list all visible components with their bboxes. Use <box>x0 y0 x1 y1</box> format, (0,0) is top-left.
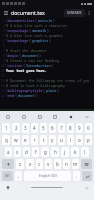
staticText: \documentclass <box>6 18 35 23</box>
button[interactable]: Hide keyboard <box>83 184 90 191</box>
staticText: \usepackage <box>6 38 29 43</box>
button[interactable]: GIF <box>36 113 43 120</box>
staticText: q <box>5 137 8 143</box>
staticText: 3 <box>24 125 27 131</box>
staticText: 14 <box>1 84 5 88</box>
button[interactable]: t <box>40 135 47 145</box>
staticText: c <box>38 161 41 167</box>
button[interactable]: e <box>22 135 29 145</box>
button[interactable]: 4 <box>31 123 38 133</box>
button[interactable]: c <box>36 159 43 169</box>
button[interactable]: 6 <box>49 123 56 133</box>
staticText: g <box>44 149 47 155</box>
button[interactable]: Menu <box>2 9 10 17</box>
staticText: % need to have a bibliography <box>6 83 65 88</box>
staticText: } <box>39 53 42 58</box>
staticText: GENERATE <box>67 11 82 15</box>
button[interactable]: 8 <box>67 123 74 133</box>
button[interactable]: o <box>76 135 83 145</box>
staticText: t <box>43 137 45 143</box>
button[interactable]: Settings <box>67 113 74 120</box>
button[interactable]: v <box>45 159 52 169</box>
button[interactable]: i <box>67 135 74 145</box>
staticText: graphicx <box>32 38 49 43</box>
button[interactable]: 1 <box>2 123 10 133</box>
staticText: 3 <box>3 29 5 33</box>
button[interactable]: y <box>49 135 56 145</box>
staticText: 0 <box>87 125 90 131</box>
staticText: } <box>35 93 38 98</box>
button[interactable]: Voice input <box>4 184 11 191</box>
button[interactable]: More <box>83 113 90 120</box>
button[interactable]: a <box>5 147 12 157</box>
staticText: l <box>84 149 86 155</box>
staticText: 4 <box>3 34 5 38</box>
button[interactable]: 7 <box>58 123 65 133</box>
button[interactable]: . <box>73 171 80 181</box>
button[interactable]: m <box>72 159 79 169</box>
button[interactable]: z <box>16 159 24 169</box>
staticText: { <box>19 53 22 58</box>
staticText: 2 <box>3 24 5 28</box>
staticText: plain <box>46 88 57 93</box>
button[interactable]: 9 <box>76 123 83 133</box>
button[interactable]: GENERATE <box>64 9 85 17</box>
staticText: \end <box>6 93 15 98</box>
staticText: } <box>49 38 52 43</box>
button[interactable]: f <box>32 147 39 157</box>
staticText: 6 <box>3 44 5 48</box>
staticText: !#1 <box>5 174 10 178</box>
button[interactable]: q <box>2 135 10 145</box>
staticText: } <box>53 18 56 23</box>
staticText: x <box>29 161 32 167</box>
staticText: n <box>65 161 68 167</box>
button[interactable]: r <box>31 135 38 145</box>
button[interactable]: x <box>26 159 34 169</box>
button[interactable]: l <box>81 147 89 157</box>
staticText: amsmath <box>32 28 47 33</box>
button[interactable]: Themes <box>20 113 27 120</box>
staticText: document.tex <box>11 9 64 16</box>
button[interactable]: 0 <box>85 123 92 133</box>
button[interactable]: s <box>14 147 21 157</box>
staticText: 13 <box>1 79 5 83</box>
staticText: \section <box>6 63 23 68</box>
button[interactable]: 5 <box>40 123 47 133</box>
button[interactable]: u <box>58 135 65 145</box>
staticText: u <box>60 137 63 143</box>
button[interactable]: !#1 <box>2 171 13 181</box>
button[interactable]: p <box>85 135 92 145</box>
staticText: k <box>74 149 77 155</box>
staticText: s <box>16 149 19 155</box>
button[interactable]: 3 <box>22 123 29 133</box>
staticText: z <box>19 161 22 167</box>
button[interactable]: d <box>23 147 30 157</box>
staticText: d <box>25 149 28 155</box>
button[interactable]: g <box>41 147 49 157</box>
button[interactable]: b <box>54 159 61 169</box>
staticText: 8 <box>3 54 5 58</box>
button[interactable]: Backspace <box>81 159 92 169</box>
button[interactable]: h <box>51 147 59 157</box>
staticText: i <box>70 137 72 143</box>
staticText: % A blue line with a graphic <box>6 33 63 38</box>
button[interactable]: Clipboard <box>51 113 58 120</box>
button[interactable]: j <box>61 147 69 157</box>
button[interactable]: k <box>71 147 79 157</box>
button[interactable]: Shift <box>2 159 14 169</box>
staticText: \begin <box>6 53 19 58</box>
staticText: m <box>73 161 78 167</box>
staticText: { <box>23 63 26 68</box>
staticText: 5 <box>3 39 5 43</box>
button[interactable]: w <box>12 135 20 145</box>
button[interactable]: n <box>63 159 70 169</box>
button[interactable]: English (US) <box>24 171 71 181</box>
staticText: 2 <box>15 125 18 131</box>
button[interactable]: Assistant <box>4 113 11 120</box>
button[interactable]: 2 <box>12 123 20 133</box>
staticText: % A blue line with a character <box>6 23 68 28</box>
button[interactable]: , <box>15 171 22 181</box>
staticText: % Start the document <box>6 48 47 53</box>
button[interactable]: More options <box>85 9 92 16</box>
button[interactable]: Enter <box>82 171 92 181</box>
